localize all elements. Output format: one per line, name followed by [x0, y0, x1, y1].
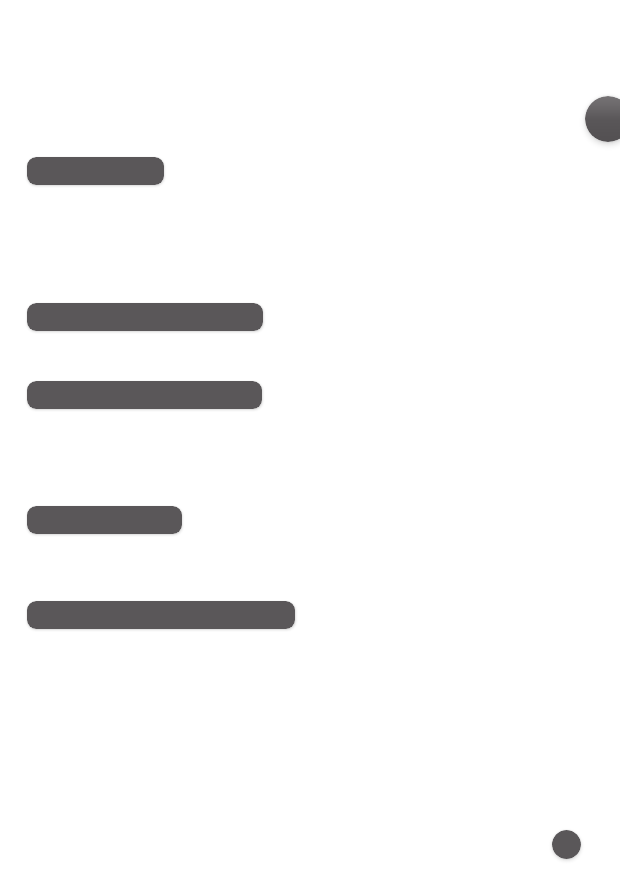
button[interactable]: Compose — [552, 830, 581, 859]
button[interactable]: Row three — [27, 506, 182, 534]
button[interactable]: Row four — [27, 601, 295, 629]
button[interactable]: Row one — [27, 303, 263, 331]
button[interactable]: Headline — [27, 157, 164, 185]
button[interactable]: Row two — [27, 381, 262, 409]
button[interactable]: Open profile — [585, 96, 620, 142]
